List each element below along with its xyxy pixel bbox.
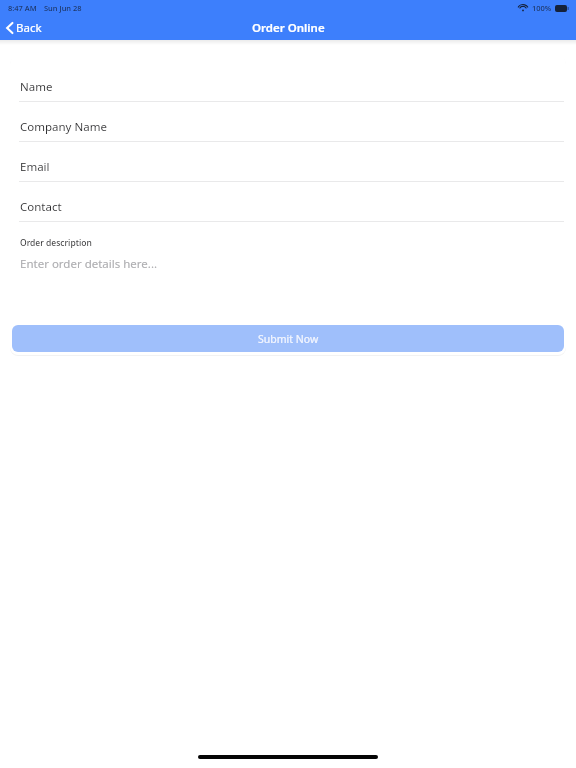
- staticText: Back: [16, 20, 42, 36]
- button[interactable]: Order description: [10, 237, 566, 272]
- staticText: Name: [20, 79, 53, 95]
- button[interactable]: Email: [10, 152, 566, 192]
- button[interactable]: Back: [0, 17, 52, 39]
- staticText: Enter order details here...: [20, 256, 158, 272]
- button[interactable]: Name: [10, 72, 566, 112]
- staticText: Sun Jun 28: [44, 3, 82, 13]
- staticText: 8:47 AM: [8, 3, 37, 13]
- staticText: Submit Now: [258, 332, 319, 346]
- button[interactable]: Company Name: [10, 112, 566, 152]
- staticText: Order description: [20, 237, 92, 249]
- button[interactable]: Contact: [10, 192, 566, 232]
- staticText: Email: [20, 159, 50, 175]
- staticText: Contact: [20, 199, 62, 215]
- button[interactable]: Submit Now: [12, 325, 564, 352]
- staticText: 100%: [532, 3, 552, 13]
- staticText: Company Name: [20, 119, 107, 135]
- staticText: Order Online: [252, 20, 325, 36]
